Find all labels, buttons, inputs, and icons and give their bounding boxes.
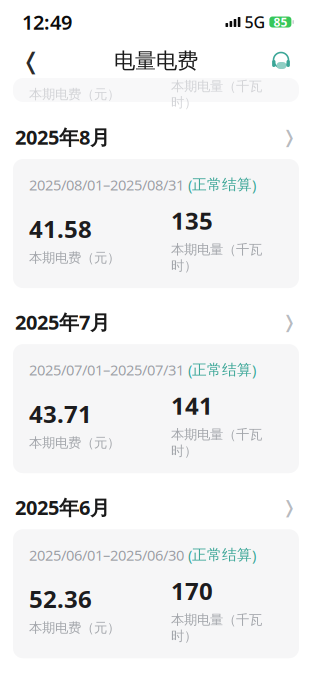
staticText: 12:49 (22, 9, 72, 35)
staticText: 本期电费（元） (29, 435, 120, 451)
staticText: 本期电量（千瓦时） (171, 612, 262, 644)
staticText: 2025年8月 (15, 124, 110, 150)
staticText: ❭ (282, 497, 297, 517)
staticText: ( (184, 545, 192, 565)
button[interactable]: 返回 (14, 44, 48, 78)
staticText: 2025年6月 (15, 494, 110, 520)
button[interactable]: 2025年6月 (13, 494, 299, 520)
button[interactable]: 2025/08/01–2025/08/31 (13, 159, 299, 288)
staticText: 正常结算 (192, 176, 252, 194)
button[interactable]: 2025年7月 (13, 309, 299, 335)
staticText: 5G (244, 11, 265, 33)
staticText: 41.58 (29, 213, 92, 245)
staticText: 2025/08/01–2025/08/31 (29, 175, 184, 194)
staticText: ( (184, 360, 192, 380)
staticText: 170 (171, 575, 213, 607)
button[interactable]: 2025/06/01–2025/06/30 (13, 529, 299, 658)
staticText: 2025/07/01–2025/07/31 (29, 360, 184, 380)
staticText: ( (184, 175, 192, 194)
staticText: 本期电费（元） (29, 86, 120, 103)
staticText: 135 (171, 204, 213, 236)
staticText: 本期电费（元） (29, 620, 120, 636)
staticText: ❬ (21, 48, 40, 74)
staticText: 本期电量（千瓦时） (171, 241, 262, 274)
staticText: ) (252, 360, 256, 380)
staticText: 141 (171, 390, 213, 421)
staticText: ) (252, 175, 256, 194)
staticText: 2025年7月 (15, 309, 110, 335)
staticText: 85 (273, 14, 287, 30)
button[interactable]: 客服 (264, 44, 298, 78)
staticText: ) (252, 545, 256, 565)
staticText: 43.71 (29, 398, 92, 430)
staticText: 电量电费 (114, 48, 198, 74)
staticText: 2025/06/01–2025/06/30 (29, 545, 184, 565)
staticText: 本期电量（千瓦时） (171, 78, 262, 111)
staticText: ❭ (282, 312, 297, 332)
staticText: 52.36 (29, 583, 92, 615)
staticText: 本期电费（元） (29, 249, 120, 266)
button[interactable]: 2025/07/01–2025/07/31 (13, 344, 299, 473)
button[interactable]: 2025年8月 (13, 124, 299, 150)
staticText: 正常结算 (192, 546, 252, 564)
staticText: ❭ (282, 127, 297, 147)
staticText: 正常结算 (192, 361, 252, 379)
staticText: 本期电量（千瓦时） (171, 426, 262, 459)
